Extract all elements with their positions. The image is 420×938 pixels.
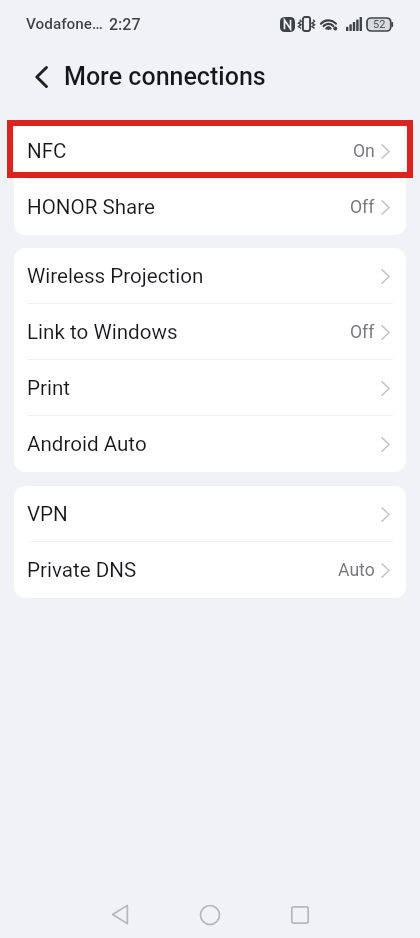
staticText: Print bbox=[27, 376, 71, 400]
button[interactable]: Link to Windows bbox=[14, 304, 406, 360]
staticText: Private DNS bbox=[27, 558, 137, 582]
staticText: Vodafone… bbox=[26, 15, 103, 33]
staticText: More connections bbox=[64, 62, 266, 91]
button[interactable]: HONOR Share bbox=[14, 179, 406, 235]
button[interactable]: Android Auto bbox=[14, 416, 406, 472]
button[interactable]: Back bbox=[75, 891, 165, 938]
button[interactable]: Wireless Projection bbox=[14, 248, 406, 304]
staticText: NFC bbox=[27, 139, 67, 163]
staticText: 52 bbox=[373, 18, 386, 31]
staticText: Wireless Projection bbox=[27, 264, 204, 288]
staticText: Off bbox=[350, 322, 375, 343]
staticText: Auto bbox=[338, 560, 375, 581]
button[interactable]: NFC bbox=[14, 123, 406, 179]
button[interactable]: Recent apps bbox=[255, 891, 345, 938]
staticText: HONOR Share bbox=[27, 195, 155, 219]
staticText: VPN bbox=[27, 502, 68, 526]
button[interactable]: Home bbox=[165, 891, 255, 938]
button[interactable]: Private DNS bbox=[14, 542, 406, 598]
staticText: Off bbox=[350, 197, 375, 218]
button[interactable]: Back bbox=[24, 57, 58, 97]
button[interactable]: Print bbox=[14, 360, 406, 416]
button[interactable]: VPN bbox=[14, 486, 406, 542]
staticText: Android Auto bbox=[27, 432, 147, 456]
staticText: Link to Windows bbox=[27, 320, 178, 344]
staticText: On bbox=[353, 141, 375, 162]
staticText: 2:27 bbox=[109, 15, 141, 34]
